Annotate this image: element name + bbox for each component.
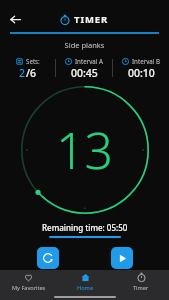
staticText: TIMER <box>74 13 109 26</box>
staticText: Timer <box>133 284 149 292</box>
staticText: Remaining time: 05:50 <box>42 222 128 233</box>
staticText: Side planks <box>0 40 169 50</box>
button[interactable]: Sets: <box>0 56 55 81</box>
button[interactable]: Restart <box>37 247 59 269</box>
staticText: Sets: <box>26 57 40 65</box>
staticText: 2 <box>19 66 26 80</box>
button[interactable]: Back <box>6 10 24 28</box>
staticText: 00:10 <box>128 66 155 80</box>
staticText: /6 <box>26 66 37 80</box>
button[interactable]: Timer <box>113 270 169 294</box>
button[interactable]: Interval A <box>56 56 112 81</box>
staticText: My Favorites <box>12 284 46 292</box>
staticText: Interval A <box>75 57 103 65</box>
button[interactable]: My Favorites <box>0 270 57 294</box>
staticText: Interval B <box>132 57 161 65</box>
button[interactable]: Home <box>57 270 113 294</box>
button[interactable]: Play <box>111 247 133 269</box>
staticText: Home <box>77 284 94 292</box>
staticText: 13 <box>56 116 114 184</box>
staticText: 00:45 <box>71 66 98 80</box>
button[interactable]: Interval B <box>113 56 169 81</box>
